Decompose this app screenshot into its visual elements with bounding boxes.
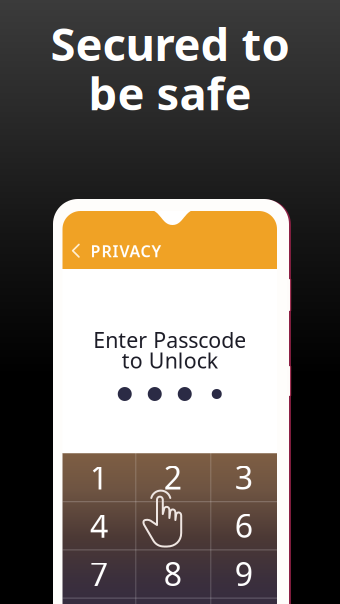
staticText: 7	[90, 552, 108, 595]
staticText: to Unlock	[122, 346, 218, 374]
staticText: 6	[235, 504, 253, 547]
staticText: 9	[235, 552, 253, 595]
button[interactable]: PRIVACY	[71, 240, 231, 262]
staticText: 1	[90, 456, 108, 498]
button[interactable]	[135, 501, 210, 549]
button[interactable]: 3	[210, 453, 277, 501]
button[interactable]: 2	[135, 453, 210, 501]
button[interactable]: 6	[210, 501, 277, 549]
staticText: Secured to	[50, 13, 289, 73]
button[interactable]: 1	[62, 453, 135, 501]
staticText: 4	[90, 504, 108, 547]
button[interactable]: 4	[62, 501, 135, 549]
button[interactable]: 7	[62, 549, 135, 598]
button[interactable]: 9	[210, 549, 277, 598]
staticText: 2	[164, 456, 182, 498]
staticText: 3	[235, 456, 253, 498]
button[interactable]: 8	[135, 549, 210, 598]
staticText: be safe	[88, 62, 251, 123]
staticText: Enter Passcode	[93, 326, 246, 354]
staticText: 8	[164, 552, 182, 595]
staticText: PRIVACY	[90, 240, 161, 262]
